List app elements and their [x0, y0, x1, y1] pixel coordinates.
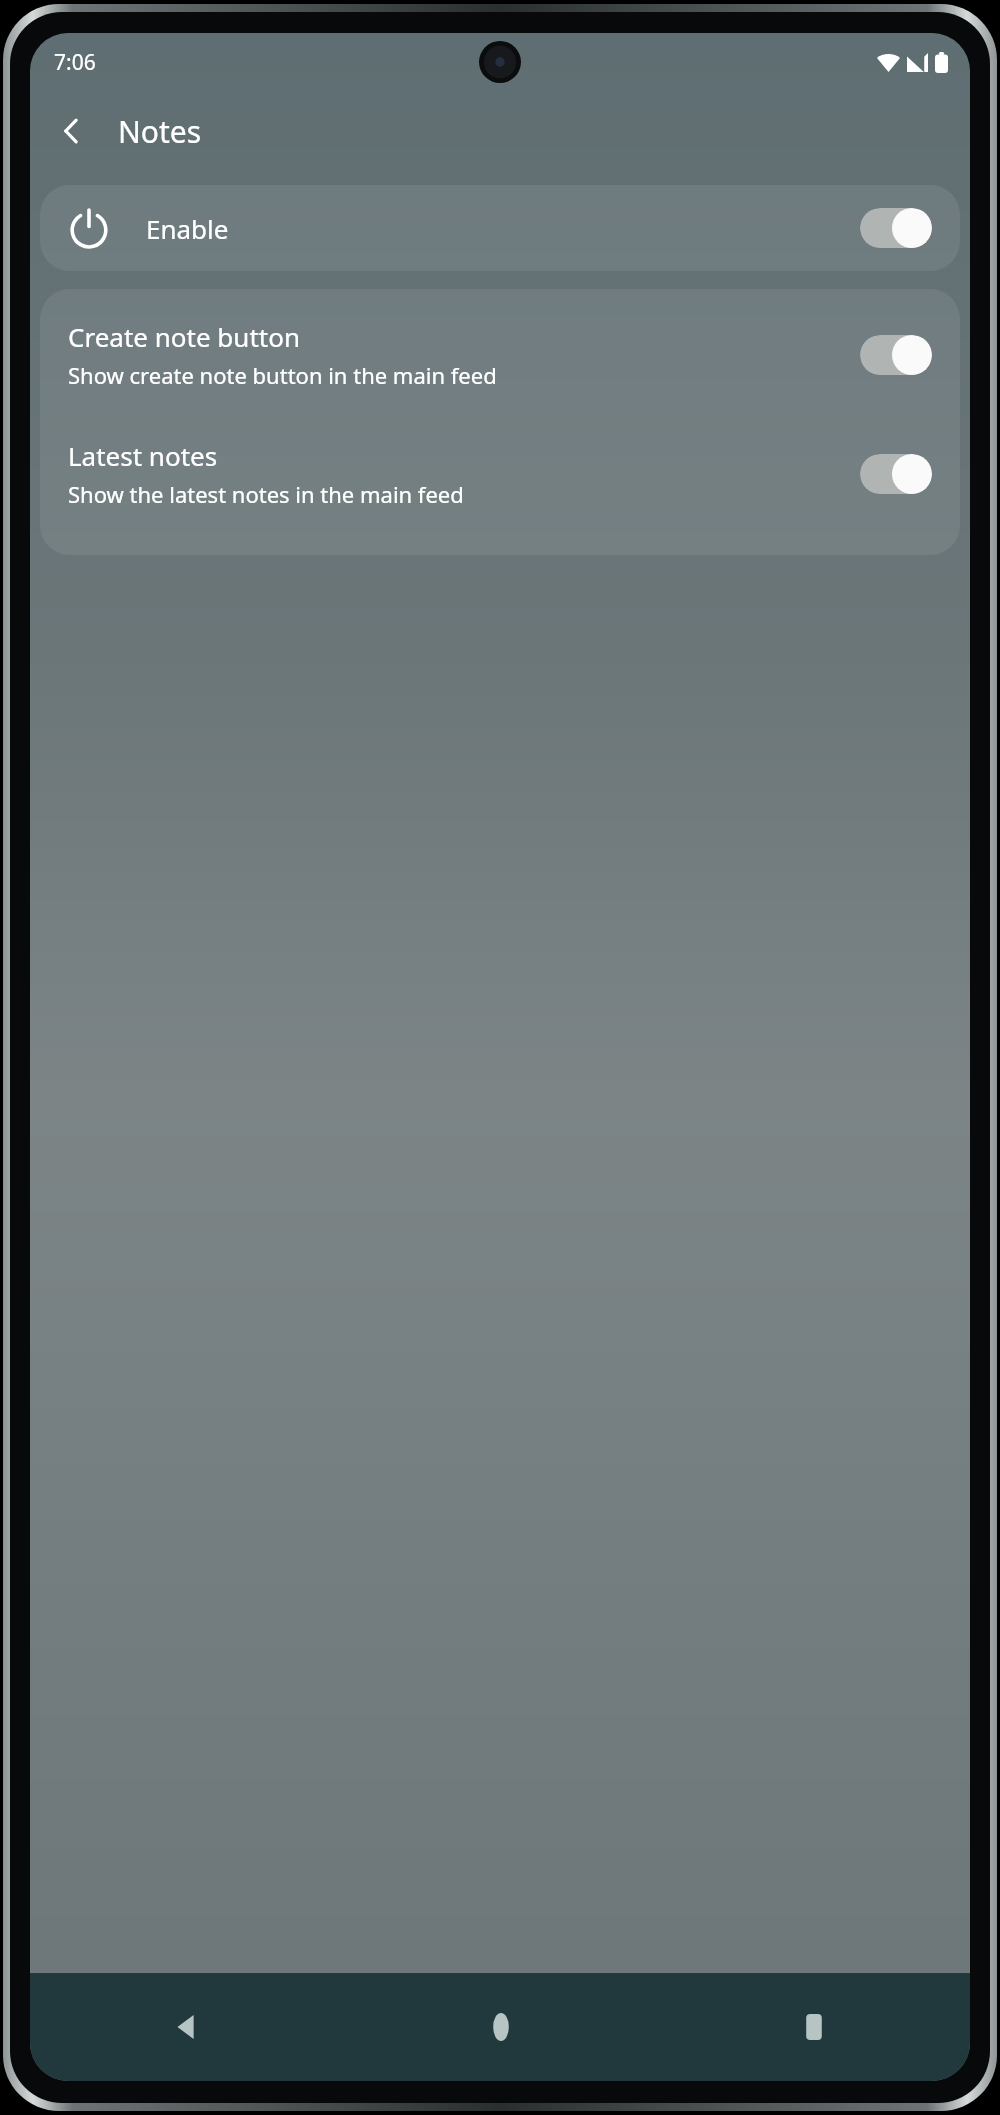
staticText: Notes [118, 111, 202, 152]
button[interactable]: Latest notes [40, 438, 960, 509]
staticText: Latest notes [68, 438, 218, 473]
staticText: Show the latest notes in the main feed [68, 479, 464, 509]
staticText: 7:06 [54, 48, 96, 77]
button[interactable]: Toggle [860, 335, 932, 375]
button[interactable]: Home [344, 1973, 657, 2081]
staticText: Enable [146, 211, 229, 246]
button[interactable]: Back [30, 1973, 344, 2081]
button[interactable]: Enable [40, 185, 960, 271]
button[interactable]: Back [44, 103, 100, 159]
button[interactable]: Toggle [860, 208, 932, 248]
button[interactable]: Create note button [40, 319, 960, 390]
staticText: Show create note button in the main feed [68, 360, 497, 390]
button[interactable]: Toggle [860, 454, 932, 494]
button[interactable]: Recent apps [657, 1973, 970, 2081]
staticText: Create note button [68, 319, 300, 354]
